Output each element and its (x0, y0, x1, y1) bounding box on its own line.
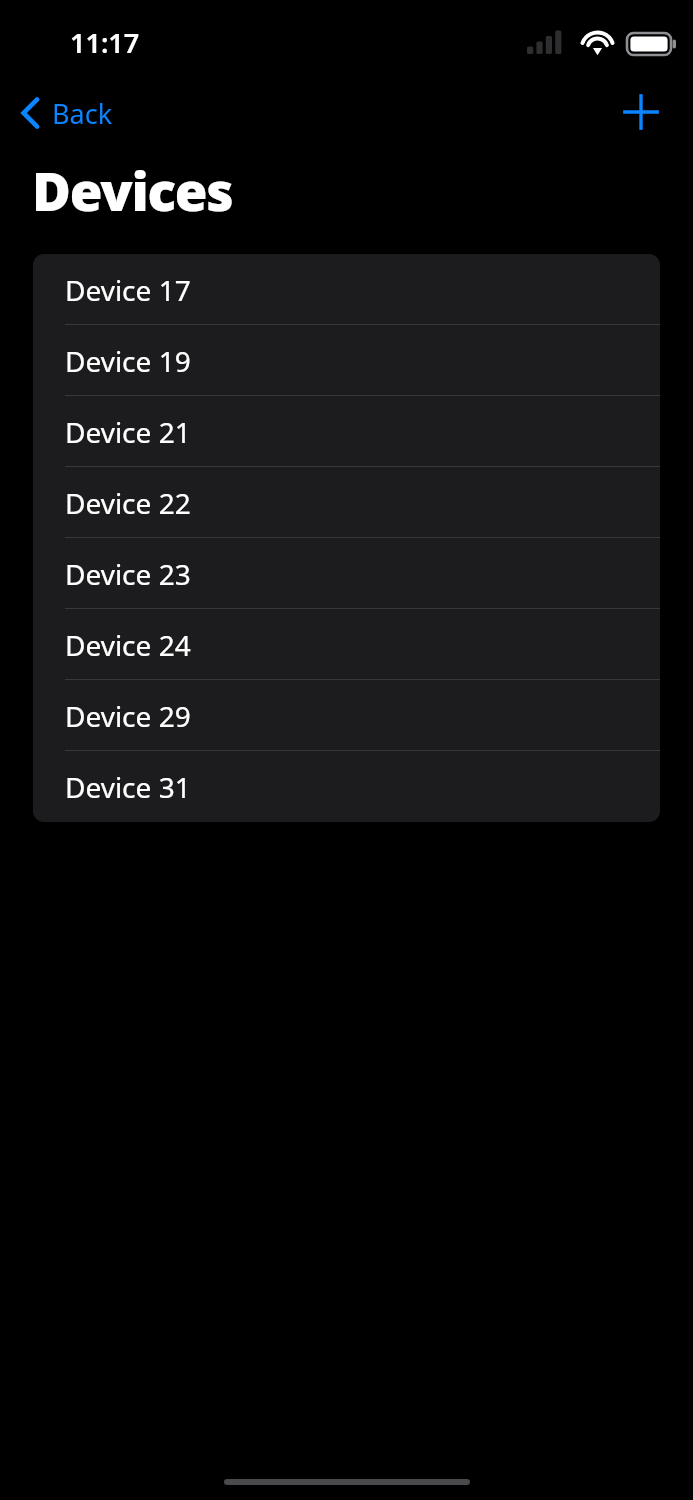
staticText: Device 21 (65, 413, 191, 451)
button[interactable]: Device 19 (33, 325, 660, 396)
button[interactable]: Device 21 (33, 396, 660, 467)
button[interactable]: Add device (607, 78, 675, 146)
staticText: Device 19 (65, 342, 191, 380)
button[interactable]: Device 23 (33, 538, 660, 609)
staticText: Device 22 (65, 484, 191, 522)
staticText: 11:17 (70, 24, 140, 58)
staticText: Device 17 (65, 271, 191, 309)
button[interactable]: Device 31 (33, 751, 660, 822)
staticText: Back (52, 95, 113, 132)
staticText: Device 24 (65, 626, 191, 664)
button[interactable]: Device 17 (33, 254, 660, 325)
staticText: Device 29 (65, 697, 191, 735)
staticText: Device 31 (65, 768, 191, 806)
button[interactable]: Back (14, 88, 125, 138)
staticText: Device 23 (65, 555, 191, 593)
button[interactable]: Device 24 (33, 609, 660, 680)
button[interactable]: Device 22 (33, 467, 660, 538)
button[interactable]: Device 29 (33, 680, 660, 751)
staticText: Devices (32, 154, 233, 226)
